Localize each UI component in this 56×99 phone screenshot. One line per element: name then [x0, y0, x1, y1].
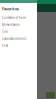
- button[interactable]: Alimentación: [0, 21, 37, 28]
- staticText: Alimentación: [2, 23, 20, 26]
- button[interactable]: Crisi: [0, 28, 37, 35]
- staticText: Calculadora bolus: [2, 37, 26, 40]
- button[interactable]: Calculadora bolus: [0, 35, 37, 42]
- staticText: Chat: [2, 44, 8, 47]
- button[interactable]: New entry: [46, 92, 55, 98]
- staticText: Favoritos: [2, 6, 19, 11]
- button[interactable]: Cuidados d'hora: [0, 14, 37, 21]
- staticText: Crisi: [2, 30, 8, 33]
- button[interactable]: Chat: [0, 42, 37, 49]
- staticText: Cuidados d'hora: [2, 16, 25, 19]
